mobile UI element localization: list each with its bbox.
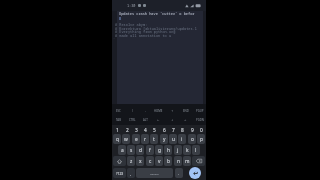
staticText: 2: [126, 127, 129, 134]
button[interactable]: f: [146, 145, 154, 155]
button[interactable]: t: [150, 134, 158, 144]
button[interactable]: PGUP: [193, 107, 206, 114]
staticText: g: [158, 147, 161, 154]
staticText: w: [124, 136, 128, 143]
staticText: u: [172, 136, 175, 143]
staticText: ?123: [116, 171, 124, 176]
staticText: # made all annotation to u: [115, 33, 172, 38]
staticText: PGDN: [196, 118, 204, 122]
staticText: i: [181, 136, 183, 143]
staticText: # Korrektura [aktualisierung/updates.l: [115, 26, 197, 31]
staticText: a: [121, 147, 124, 154]
button[interactable]: v: [155, 156, 163, 166]
button[interactable]: 1: [113, 127, 121, 134]
button[interactable]: ?123: [113, 168, 126, 178]
button[interactable]: PGDN: [193, 116, 206, 123]
button[interactable]: h: [164, 145, 172, 155]
staticText: f: [149, 147, 151, 154]
button[interactable]: a: [118, 145, 126, 155]
button[interactable]: 0: [197, 127, 205, 134]
staticText: b: [167, 158, 170, 165]
staticText: d: [139, 147, 142, 154]
button[interactable]: /: [126, 107, 139, 114]
staticText: ESC: [116, 109, 121, 113]
button[interactable]: d: [136, 145, 144, 155]
button[interactable]: c: [146, 156, 154, 166]
button[interactable]: j: [174, 145, 182, 155]
staticText: TAB: [116, 118, 121, 122]
staticText: /: [132, 109, 134, 113]
button[interactable]: x: [136, 156, 144, 166]
button[interactable]: m: [183, 156, 191, 166]
button[interactable]: TAB: [112, 116, 125, 123]
button[interactable]: [189, 167, 201, 179]
button[interactable]: z: [127, 156, 135, 166]
staticText: 5: [153, 127, 156, 134]
button[interactable]: k: [183, 145, 191, 155]
button[interactable]: →: [179, 116, 192, 123]
button[interactable]: ALT: [139, 116, 152, 123]
staticText: ↑: [171, 109, 174, 112]
staticText: k: [186, 147, 189, 154]
button[interactable]: 6: [160, 127, 168, 134]
staticText: # Resolve abym:: [115, 22, 148, 27]
button[interactable]: END: [179, 107, 192, 114]
staticText: -: [145, 109, 146, 113]
button[interactable]: CTRL: [126, 116, 139, 123]
staticText: →: [184, 118, 187, 121]
staticText: ↓: [171, 118, 174, 121]
staticText: 1:30: [127, 3, 136, 8]
button[interactable]: p: [197, 134, 205, 144]
staticText: ,: [130, 171, 132, 176]
button[interactable]: b: [164, 156, 172, 166]
staticText: ALT: [143, 118, 148, 122]
button[interactable]: .: [175, 168, 183, 178]
button[interactable]: g: [155, 145, 163, 155]
button[interactable]: r: [141, 134, 149, 144]
button[interactable]: 2: [123, 127, 131, 134]
staticText: q: [116, 136, 119, 143]
button[interactable]: e: [132, 134, 140, 144]
button[interactable]: n: [174, 156, 182, 166]
staticText: CTRL: [129, 118, 136, 122]
button[interactable]: 5: [150, 127, 158, 134]
button[interactable]: HOME: [152, 107, 165, 114]
staticText: 8: [181, 127, 184, 134]
button[interactable]: [113, 156, 126, 166]
button[interactable]: ↑: [166, 107, 179, 114]
button[interactable]: ↓: [166, 116, 179, 123]
button[interactable]: 3: [132, 127, 140, 134]
staticText: m: [185, 158, 190, 165]
button[interactable]: 8: [178, 127, 186, 134]
staticText: r: [144, 136, 146, 143]
staticText: Gboard: [150, 172, 159, 175]
button[interactable]: u: [169, 134, 177, 144]
button[interactable]: 9: [188, 127, 196, 134]
staticText: 1: [116, 127, 119, 134]
button[interactable]: i: [178, 134, 186, 144]
button[interactable]: [192, 156, 205, 166]
staticText: c: [149, 158, 152, 165]
button[interactable]: q: [113, 134, 121, 144]
button[interactable]: w: [122, 134, 130, 144]
staticText: 3: [135, 127, 138, 134]
staticText: s: [130, 147, 133, 154]
staticText: 6: [163, 127, 166, 134]
staticText: x: [139, 158, 142, 165]
button[interactable]: 4: [141, 127, 149, 134]
staticText: 0: [200, 127, 203, 134]
button[interactable]: y: [160, 134, 168, 144]
button[interactable]: s: [127, 145, 135, 155]
button[interactable]: ,: [127, 168, 135, 178]
staticText: n: [177, 158, 180, 165]
button[interactable]: Gboard: [136, 168, 173, 178]
staticText: p: [200, 136, 203, 143]
staticText: 4: [144, 127, 147, 134]
button[interactable]: ESC: [112, 107, 125, 114]
button[interactable]: ←: [152, 116, 165, 123]
button[interactable]: o: [188, 134, 196, 144]
button[interactable]: 7: [169, 127, 177, 134]
button[interactable]: l: [192, 145, 200, 155]
staticText: .: [178, 171, 180, 176]
